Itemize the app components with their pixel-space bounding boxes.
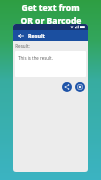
button[interactable]: Back <box>16 31 25 40</box>
button[interactable]: This is the result. <box>15 51 86 77</box>
staticText: QR or Barcode <box>20 15 82 27</box>
button[interactable]: Share <box>62 82 72 92</box>
staticText: Get text from <box>21 2 80 14</box>
button[interactable]: Copy <box>75 82 85 92</box>
staticText: This is the result. <box>18 55 53 61</box>
staticText: Result <box>28 32 45 39</box>
staticText: Result: <box>15 43 30 49</box>
